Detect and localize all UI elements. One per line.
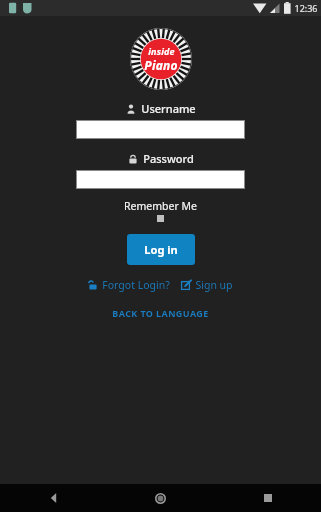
staticText: Log in [144, 242, 178, 257]
staticText: Username [141, 101, 196, 116]
staticText: inside [148, 45, 175, 57]
button[interactable]: BACK TO LANGUAGE [104, 304, 217, 322]
button[interactable]: Sign up [179, 276, 235, 294]
button[interactable]: Log in [127, 234, 195, 265]
button[interactable] [76, 120, 245, 139]
staticText: Password [143, 151, 194, 166]
staticText: Forgot Login? [102, 278, 170, 292]
staticText: 12:36 [294, 2, 318, 14]
button[interactable]: Home [107, 484, 214, 512]
button[interactable] [76, 170, 245, 189]
button[interactable]: Remember Me [124, 199, 197, 222]
staticText: Sign up [195, 278, 233, 292]
button[interactable]: Recent apps [214, 484, 321, 512]
button[interactable]: Forgot Login? [86, 276, 172, 294]
staticText: Piano [144, 57, 178, 73]
button[interactable]: Back [0, 484, 107, 512]
staticText: Remember Me [124, 199, 197, 213]
staticText: BACK TO LANGUAGE [112, 307, 209, 319]
